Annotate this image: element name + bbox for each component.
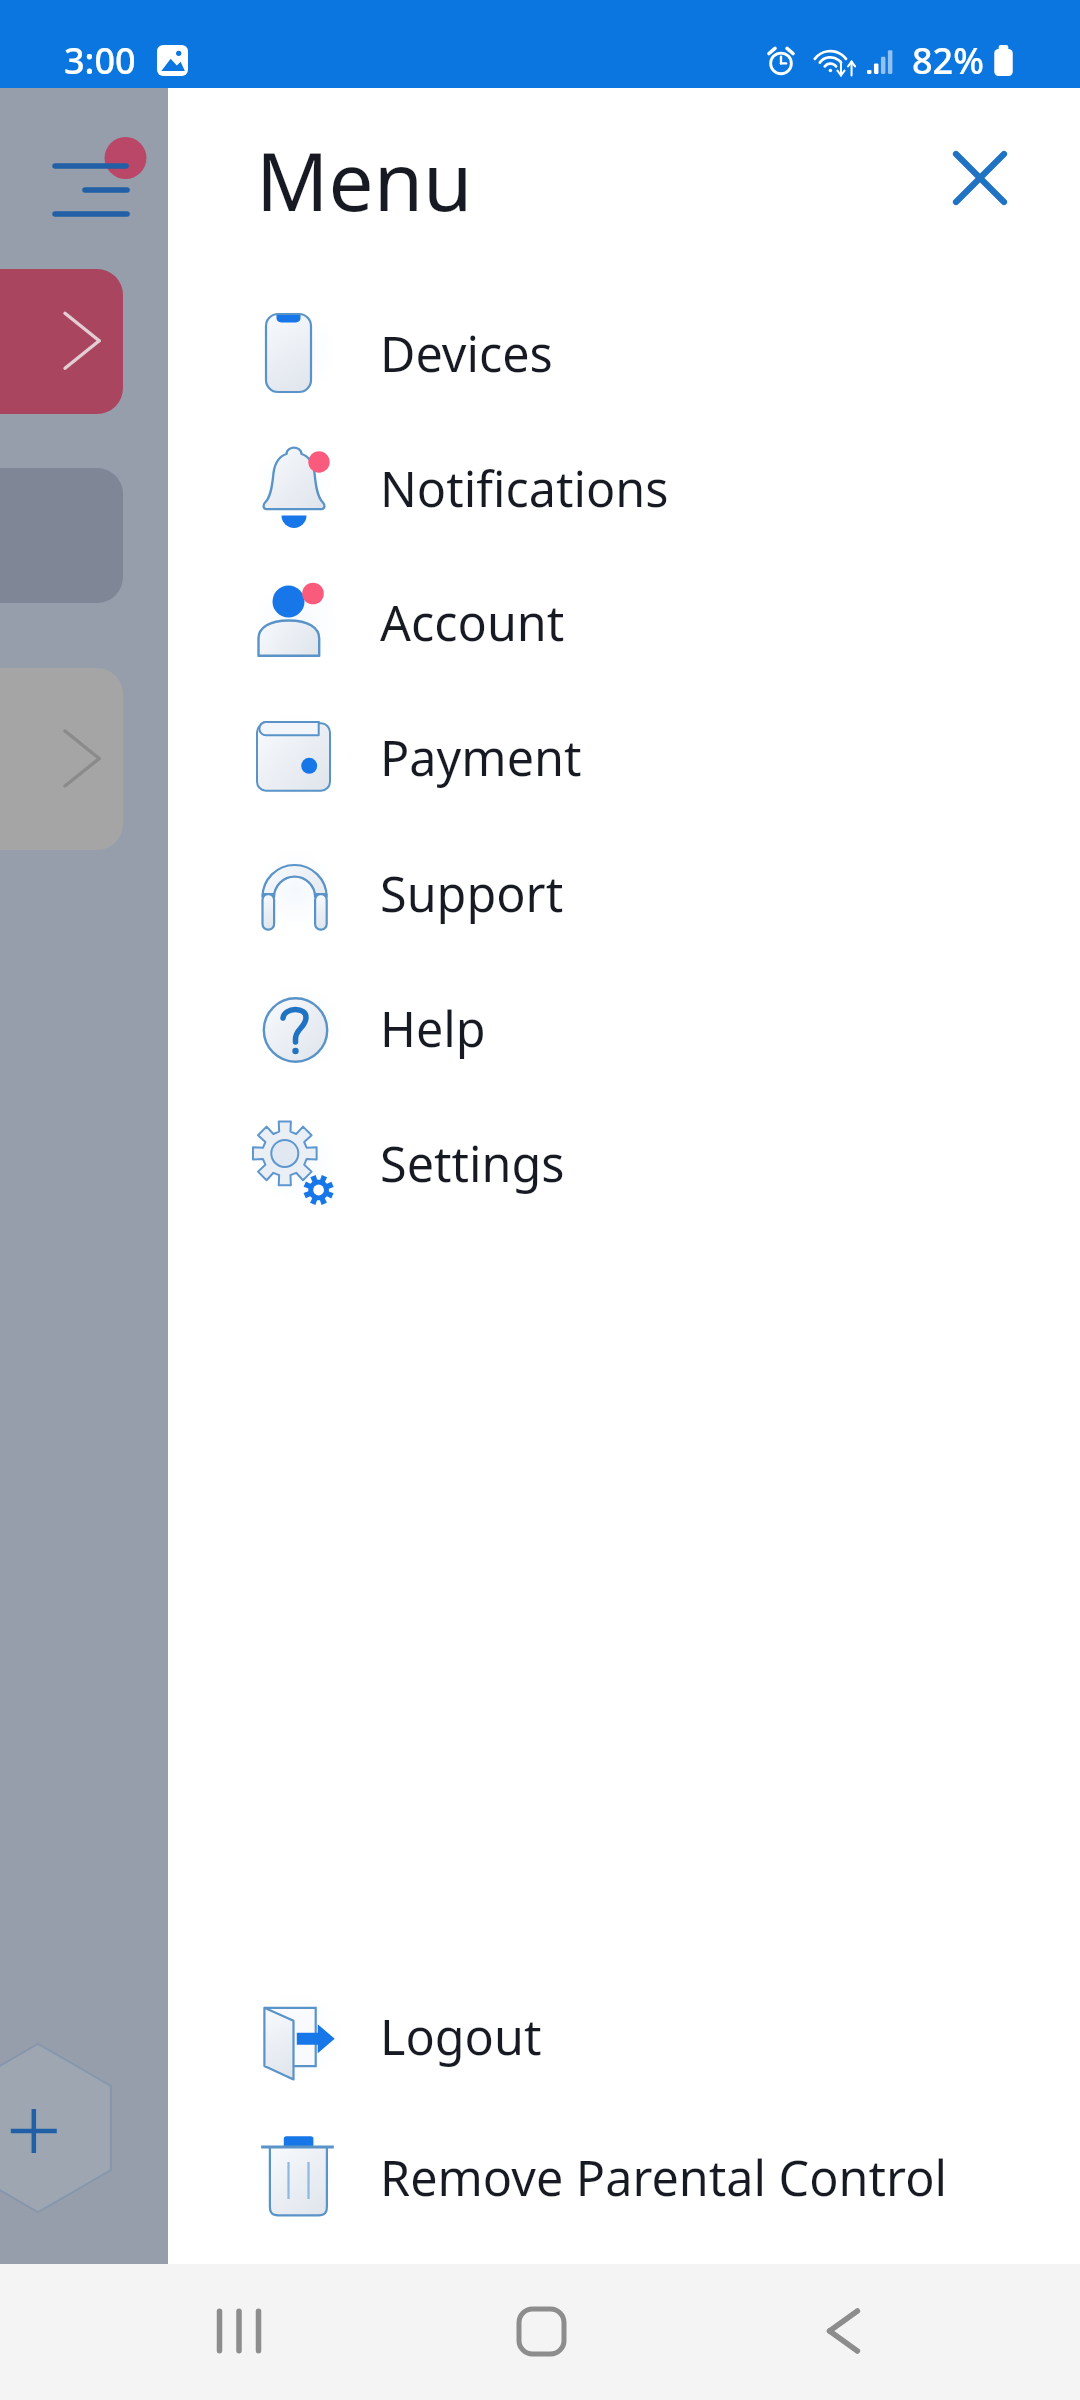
button[interactable]: Account (168, 566, 1080, 678)
staticText: Menu (256, 125, 473, 234)
button[interactable]: Settings (168, 1107, 1080, 1219)
staticText: 82% (912, 36, 984, 85)
staticText: Help (380, 995, 486, 1061)
button[interactable]: Back (788, 2276, 898, 2386)
button[interactable]: Notifications (168, 432, 1080, 544)
button[interactable]: Support (168, 837, 1080, 949)
button[interactable]: Devices (168, 297, 1080, 409)
button[interactable]: Help (168, 972, 1080, 1084)
button[interactable]: Close menu (930, 128, 1030, 228)
button[interactable]: Remove Parental Control (168, 2121, 1080, 2233)
staticText: Support (380, 860, 564, 926)
staticText: Notifications (380, 455, 669, 521)
staticText: Settings (380, 1130, 565, 1196)
staticText: Account (380, 589, 565, 655)
staticText: Remove Parental Control (380, 2144, 948, 2210)
button[interactable]: Logout (168, 1980, 1080, 2092)
staticText: Devices (380, 320, 553, 386)
button[interactable]: Close menu overlay (0, 88, 168, 2264)
staticText: Payment (380, 724, 582, 790)
button[interactable]: Payment (168, 701, 1080, 813)
button[interactable]: Recent apps (184, 2276, 294, 2386)
staticText: 3:00 (64, 36, 136, 85)
staticText: Logout (380, 2003, 542, 2069)
button[interactable]: Home (486, 2276, 596, 2386)
